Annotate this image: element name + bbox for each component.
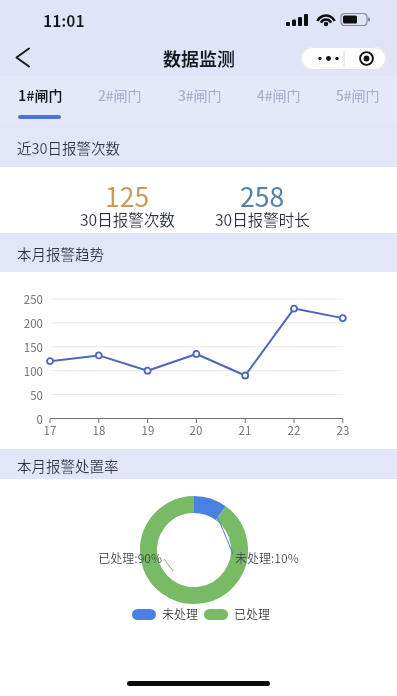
button[interactable]: 已处理 <box>234 605 271 622</box>
staticText: 258 <box>240 176 285 214</box>
button[interactable]: 1#闸门 <box>0 76 80 125</box>
staticText: 近30日报警次数 <box>17 137 121 158</box>
staticText: 4#闸门 <box>257 85 301 105</box>
button[interactable]: 5#闸门 <box>318 76 397 125</box>
button[interactable]: 2#闸门 <box>80 76 160 125</box>
staticText: 21 <box>230 422 260 439</box>
staticText: 200 <box>11 315 43 332</box>
staticText: 2#闸门 <box>98 85 142 105</box>
staticText: 250 <box>11 291 43 308</box>
staticText: 22 <box>279 422 309 439</box>
staticText: 本月报警趋势 <box>17 243 104 264</box>
staticText: 30日报警时长 <box>215 208 310 230</box>
button[interactable]: 未处理 <box>162 605 199 622</box>
button[interactable] <box>301 47 386 70</box>
button[interactable]: 4#闸门 <box>239 76 318 125</box>
staticText: 已处理 <box>234 605 271 622</box>
staticText: 23 <box>328 422 358 439</box>
staticText: 125 <box>105 176 150 214</box>
staticText: 19 <box>133 422 163 439</box>
staticText: 未处理:10% <box>235 549 299 566</box>
staticText: 未处理 <box>162 605 199 622</box>
button[interactable]: 3#闸门 <box>160 76 239 125</box>
staticText: 150 <box>11 339 43 356</box>
staticText: 已处理:90% <box>92 549 162 566</box>
staticText: 11:01 <box>43 9 85 31</box>
staticText: 50 <box>11 387 43 404</box>
staticText: 20 <box>181 422 211 439</box>
staticText: 5#闸门 <box>336 85 380 105</box>
staticText: 17 <box>35 422 65 439</box>
staticText: 本月报警处置率 <box>17 455 119 476</box>
staticText: 18 <box>84 422 114 439</box>
button[interactable] <box>8 42 40 72</box>
staticText: 100 <box>11 363 43 380</box>
staticText: 1#闸门 <box>18 85 63 105</box>
staticText: 30日报警次数 <box>80 208 175 230</box>
staticText: 数据监测 <box>163 45 235 71</box>
staticText: 3#闸门 <box>178 85 222 105</box>
staticText: 0 <box>11 411 43 428</box>
